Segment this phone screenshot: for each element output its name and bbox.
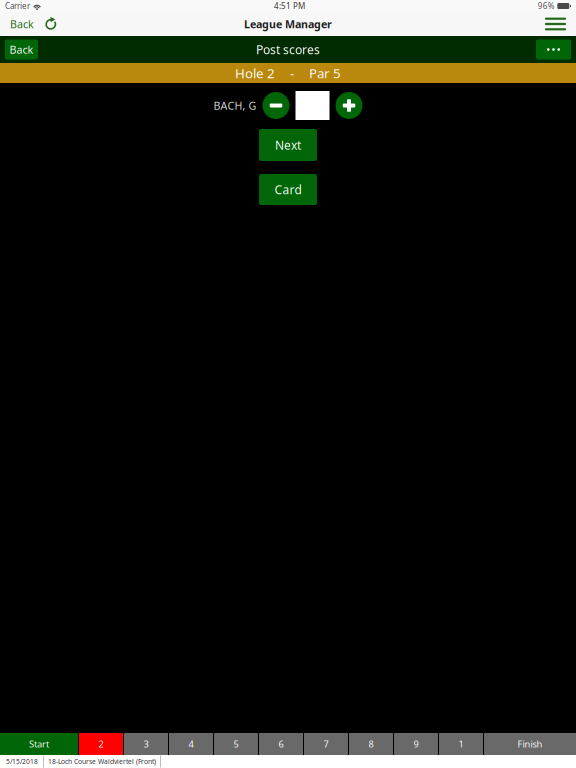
button[interactable]: Next xyxy=(259,129,317,161)
staticText: 96% xyxy=(538,1,555,11)
staticText: 5 xyxy=(233,738,238,750)
button[interactable]: 1 xyxy=(439,733,483,755)
staticText: 4 xyxy=(188,738,193,750)
button[interactable]: 2 xyxy=(79,733,123,755)
button[interactable]: Back xyxy=(0,12,41,36)
button[interactable]: Card xyxy=(259,174,317,205)
staticText: Finish xyxy=(517,738,542,750)
button[interactable]: Start xyxy=(0,733,78,755)
button[interactable]: Back xyxy=(5,39,38,59)
button[interactable]: Refresh xyxy=(41,12,61,36)
button[interactable]: 9 xyxy=(394,733,438,755)
staticText: Carrier xyxy=(5,1,30,11)
staticText: 5/15/2018 xyxy=(6,757,38,766)
staticText: Card xyxy=(274,181,301,197)
button[interactable]: Decrease score xyxy=(262,92,289,119)
button[interactable]: More options xyxy=(536,39,571,59)
staticText: 1 xyxy=(458,738,463,750)
staticText: 8 xyxy=(368,738,373,750)
staticText: Back xyxy=(9,42,33,57)
button[interactable]: Increase score xyxy=(335,92,362,119)
staticText: 9 xyxy=(413,738,418,750)
button[interactable]: 5 xyxy=(214,733,258,755)
button[interactable]: 4 xyxy=(169,733,213,755)
button[interactable]: Finish xyxy=(484,733,576,755)
staticText: 7 xyxy=(323,738,328,750)
staticText: 18-Loch Course Waldviertel (Front) xyxy=(48,757,156,766)
staticText: 3 xyxy=(143,738,148,750)
button[interactable]: Menu xyxy=(537,12,576,36)
staticText: 4:51 PM xyxy=(274,1,305,11)
staticText: 6 xyxy=(278,738,283,750)
staticText: League Manager xyxy=(244,17,332,31)
staticText: Hole 2 - Par 5 xyxy=(235,64,341,82)
button[interactable]: 3 xyxy=(124,733,168,755)
staticText: 2 xyxy=(98,738,103,750)
staticText: BACH, G xyxy=(213,98,256,113)
button[interactable]: 8 xyxy=(349,733,393,755)
staticText: Next xyxy=(275,137,301,153)
staticText: Post scores xyxy=(256,41,320,57)
staticText: Back xyxy=(10,17,34,31)
button[interactable]: 7 xyxy=(304,733,348,755)
button[interactable]: 6 xyxy=(259,733,303,755)
staticText: Start xyxy=(29,738,49,750)
